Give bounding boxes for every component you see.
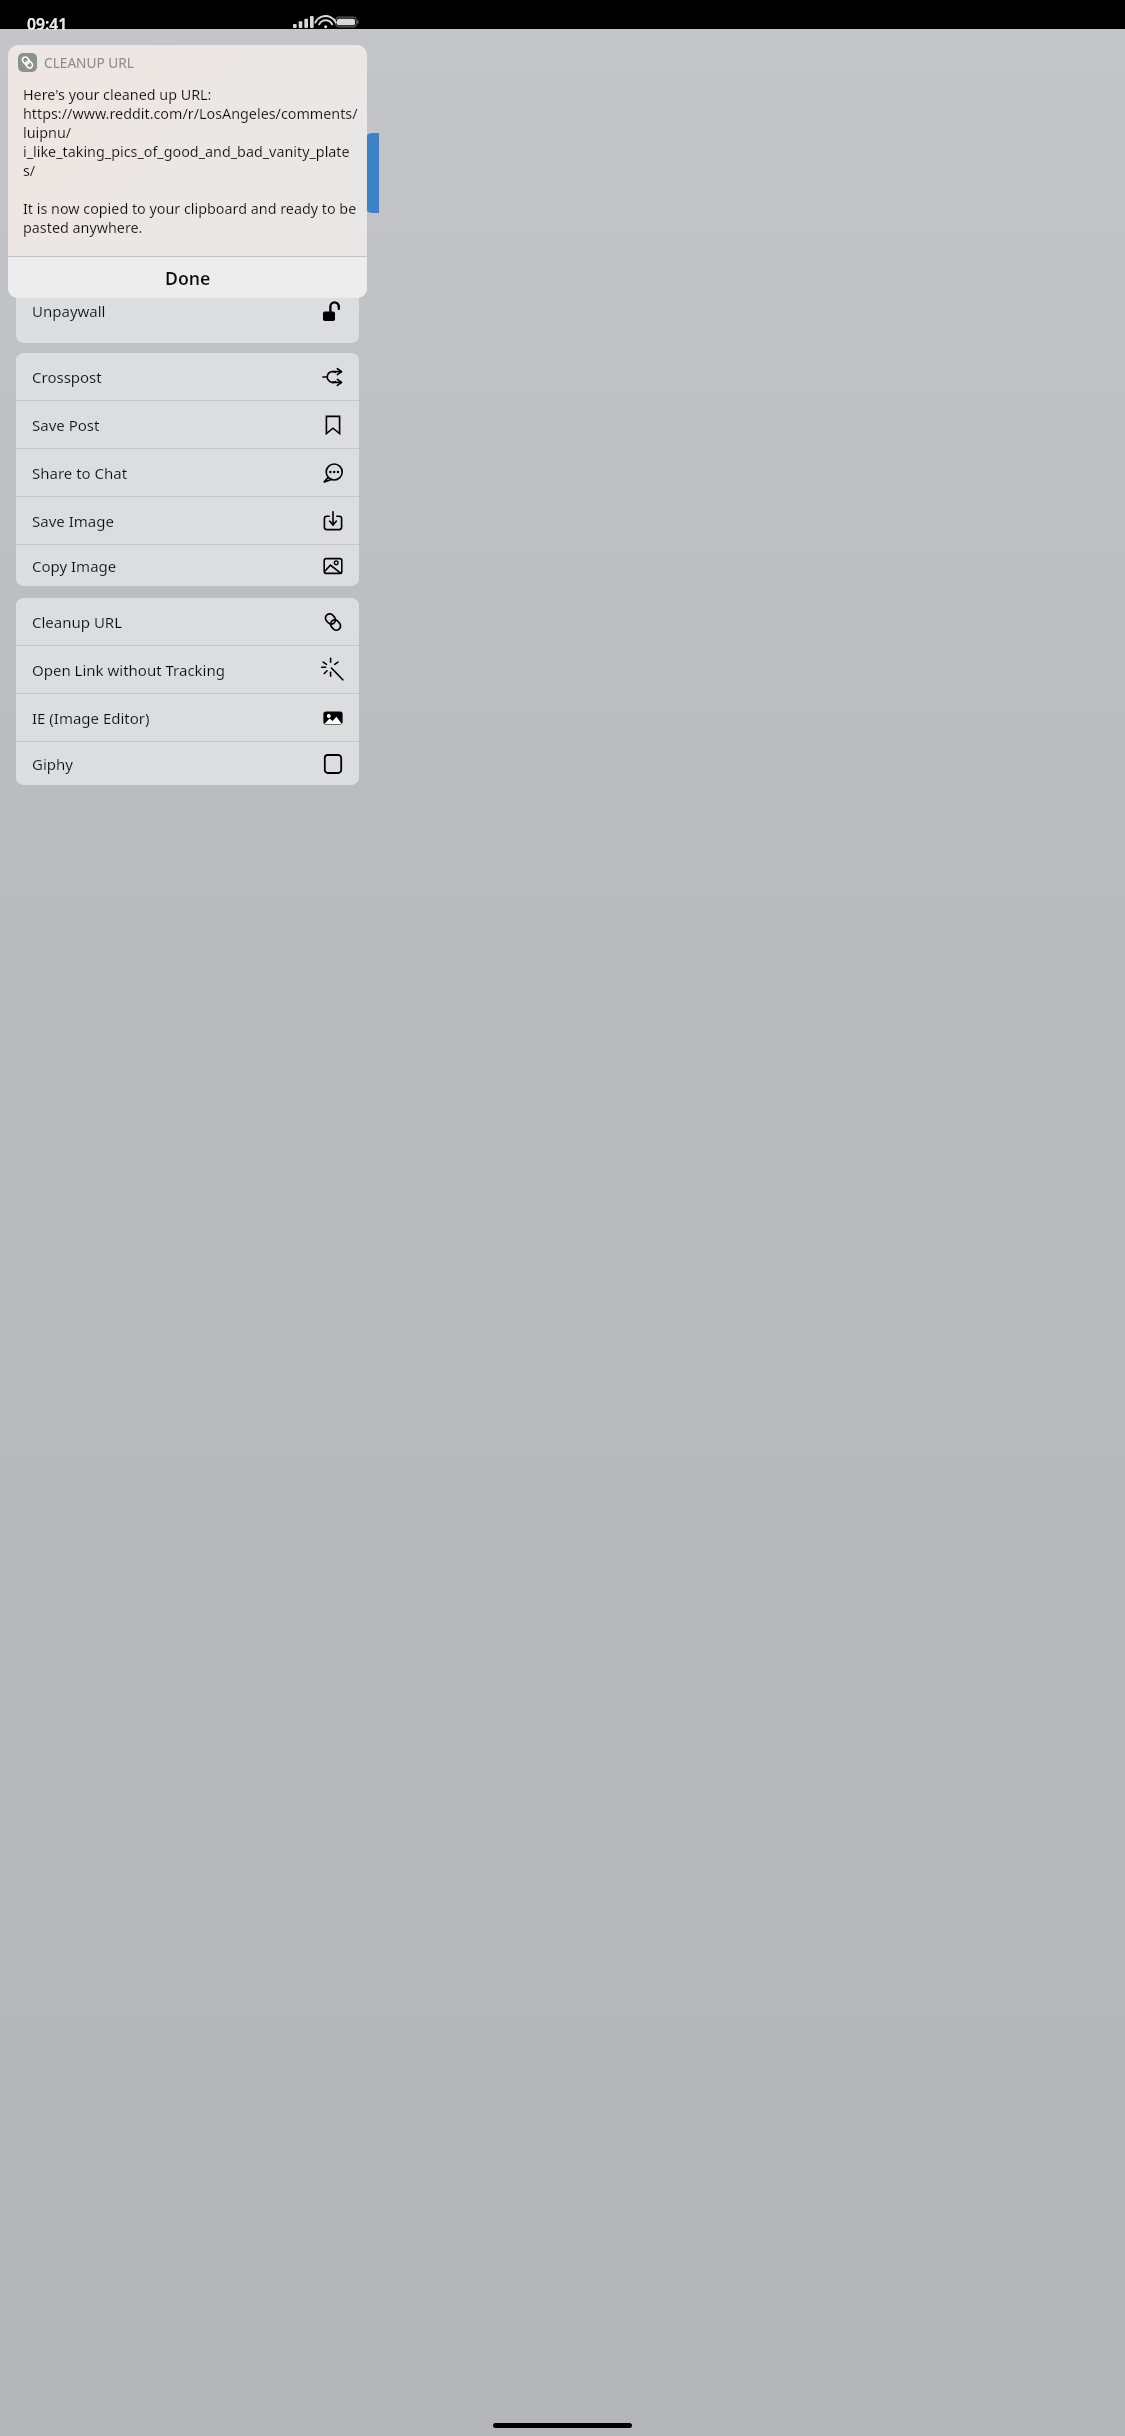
other: Home indicator [493,2423,632,2428]
button[interactable]: Copy Image [16,545,359,586]
staticText: Copy Image [32,556,117,576]
button[interactable]: Giphy [16,742,359,785]
staticText: Crosspost [32,367,102,387]
staticText: Done [165,266,211,290]
staticText: 09:41 [27,13,68,34]
button[interactable]: Cleanup URL [16,598,359,645]
staticText: Here's your cleaned up URL: https://www.… [23,85,358,237]
staticText: Share to Chat [32,463,128,483]
button[interactable]: Crosspost [16,353,359,400]
button[interactable]: Unpaywall [16,287,359,334]
staticText: Save Post [32,415,100,435]
button[interactable]: Done [8,257,367,298]
button[interactable]: Open Link without Tracking [16,646,359,693]
button[interactable]: Save Post [16,401,359,448]
button[interactable]: Save Image [16,497,359,544]
staticText: Open Link without Tracking [32,660,225,680]
staticText: Save Image [32,511,114,531]
staticText: Unpaywall [32,301,106,321]
staticText: IE (Image Editor) [32,708,150,728]
staticText: CLEANUP URL [44,53,134,72]
staticText: Giphy [32,754,73,774]
button[interactable]: Share to Chat [16,449,359,496]
staticText: Cleanup URL [32,612,123,632]
button[interactable]: IE (Image Editor) [16,694,359,741]
